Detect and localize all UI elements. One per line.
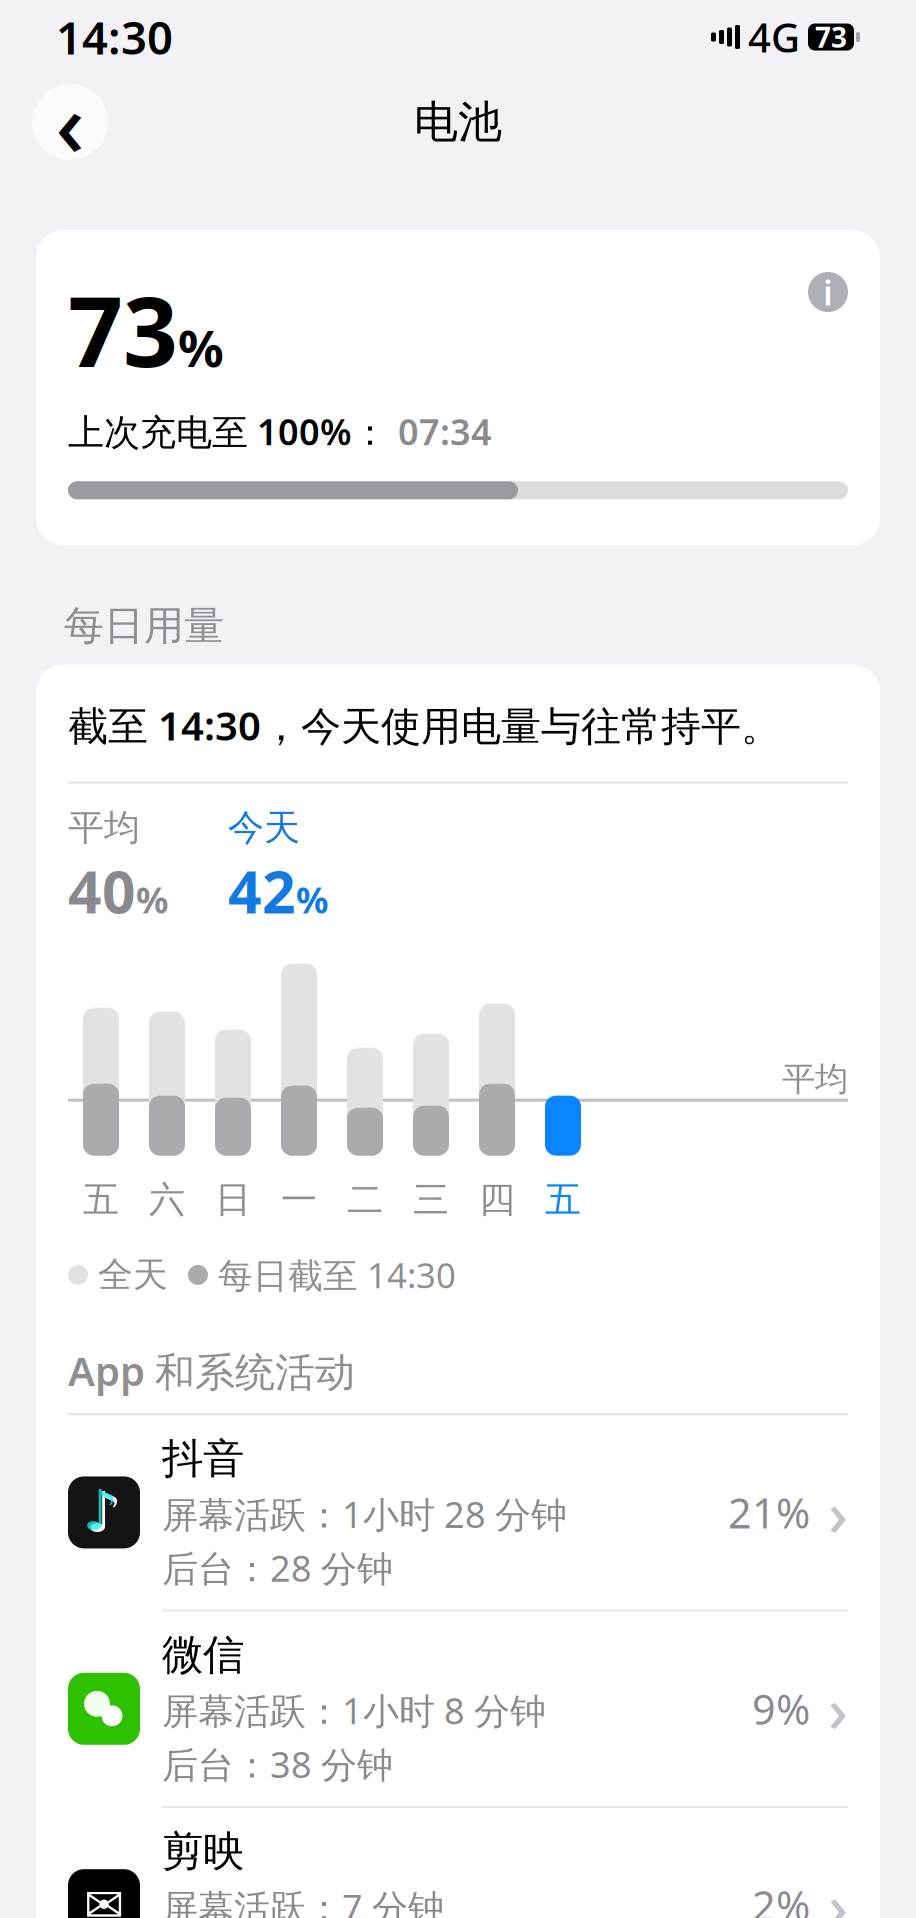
staticText: 后台：38 分钟 [162, 1740, 393, 1788]
button[interactable]: 电池信息 [808, 272, 848, 312]
staticText: 今天 [228, 805, 300, 850]
staticText: › [828, 1472, 848, 1553]
staticText: 四 [479, 1178, 515, 1222]
staticText: 平均 [68, 805, 140, 850]
staticText: 9% [752, 1681, 810, 1736]
staticText: 上次充电至 100%： [68, 407, 388, 455]
staticText: App 和系统活动 [68, 1344, 355, 1397]
staticText: 73 [815, 18, 847, 56]
staticText: 后台：28 分钟 [162, 1544, 393, 1592]
staticText: 每日截至 14:30 [218, 1252, 456, 1298]
staticText: 五 [83, 1178, 119, 1222]
staticText: 4G [748, 10, 800, 63]
staticText: 二 [347, 1178, 383, 1222]
staticText: 抖音 [162, 1433, 244, 1484]
staticText: 六 [149, 1178, 185, 1222]
staticText: 五 [545, 1178, 581, 1222]
staticText: % [136, 876, 168, 923]
staticText: 2% [752, 1878, 810, 1918]
staticText: › [828, 1864, 848, 1918]
staticText: ✉ [84, 1878, 124, 1918]
staticText: 每日用量 [64, 601, 224, 650]
button[interactable]: ✉ [68, 1808, 848, 1918]
staticText: i [823, 269, 833, 315]
staticText: 07:34 [398, 407, 492, 455]
staticText: 三 [413, 1178, 449, 1222]
staticText: % [178, 314, 224, 381]
staticText: 42 [228, 852, 296, 930]
staticText: ♪ [82, 1479, 118, 1542]
button[interactable]: 微信 [68, 1612, 848, 1806]
staticText: % [296, 876, 328, 923]
staticText: 剪映 [162, 1826, 244, 1877]
staticText: 屏幕活跃：7 分钟 [162, 1883, 444, 1918]
staticText: ♪ [86, 1481, 122, 1544]
staticText: 全天 [98, 1254, 168, 1296]
staticText: 40 [68, 852, 136, 930]
staticText: ‹ [55, 63, 84, 181]
staticText: 电池 [414, 95, 502, 149]
staticText: 日 [215, 1178, 251, 1222]
staticText: 屏幕活跃：1小时 28 分钟 [162, 1490, 567, 1538]
staticText: › [828, 1668, 848, 1749]
staticText: 21% [728, 1485, 810, 1540]
button[interactable]: ♪ [68, 1415, 848, 1610]
staticText: 平均 [782, 1059, 848, 1100]
staticText: 截至 14:30，今天使用电量与往常持平。 [68, 698, 781, 751]
staticText: 14:30 [56, 7, 173, 67]
staticText: 屏幕活跃：1小时 8 分钟 [162, 1686, 546, 1734]
button[interactable]: 返回 [32, 84, 108, 160]
staticText: 微信 [162, 1630, 244, 1680]
staticText: 一 [281, 1178, 317, 1222]
staticText: 73 [68, 266, 178, 393]
